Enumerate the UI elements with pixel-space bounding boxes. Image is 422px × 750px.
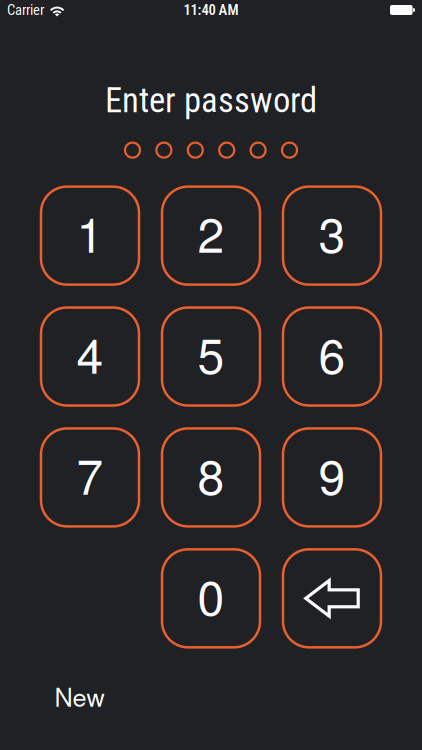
staticText: 3 — [318, 198, 345, 266]
button[interactable]: New — [54, 678, 104, 714]
button[interactable]: 6 — [283, 307, 381, 405]
button[interactable]: 3 — [283, 187, 381, 285]
staticText: 4 — [76, 319, 103, 387]
button[interactable]: 1 — [41, 187, 139, 285]
staticText: New — [54, 678, 104, 714]
button[interactable]: 0 — [162, 549, 260, 647]
staticText: 9 — [318, 440, 345, 508]
staticText: 7 — [76, 440, 103, 508]
button[interactable]: 7 — [41, 428, 139, 526]
button[interactable]: 2 — [162, 187, 260, 285]
button[interactable]: 5 — [162, 307, 260, 405]
button[interactable]: 9 — [283, 428, 381, 526]
button[interactable]: 4 — [41, 307, 139, 405]
staticText: 8 — [197, 440, 224, 508]
staticText: Carrier — [7, 1, 44, 19]
button[interactable]: Delete — [283, 549, 381, 647]
staticText: 6 — [318, 319, 345, 387]
staticText: 2 — [197, 198, 224, 266]
staticText: 5 — [197, 319, 224, 387]
staticText: Enter password — [105, 80, 317, 121]
staticText: 11:40 AM — [183, 1, 238, 19]
staticText: 1 — [76, 198, 103, 266]
staticText: 0 — [197, 560, 224, 629]
button[interactable]: 8 — [162, 428, 260, 526]
